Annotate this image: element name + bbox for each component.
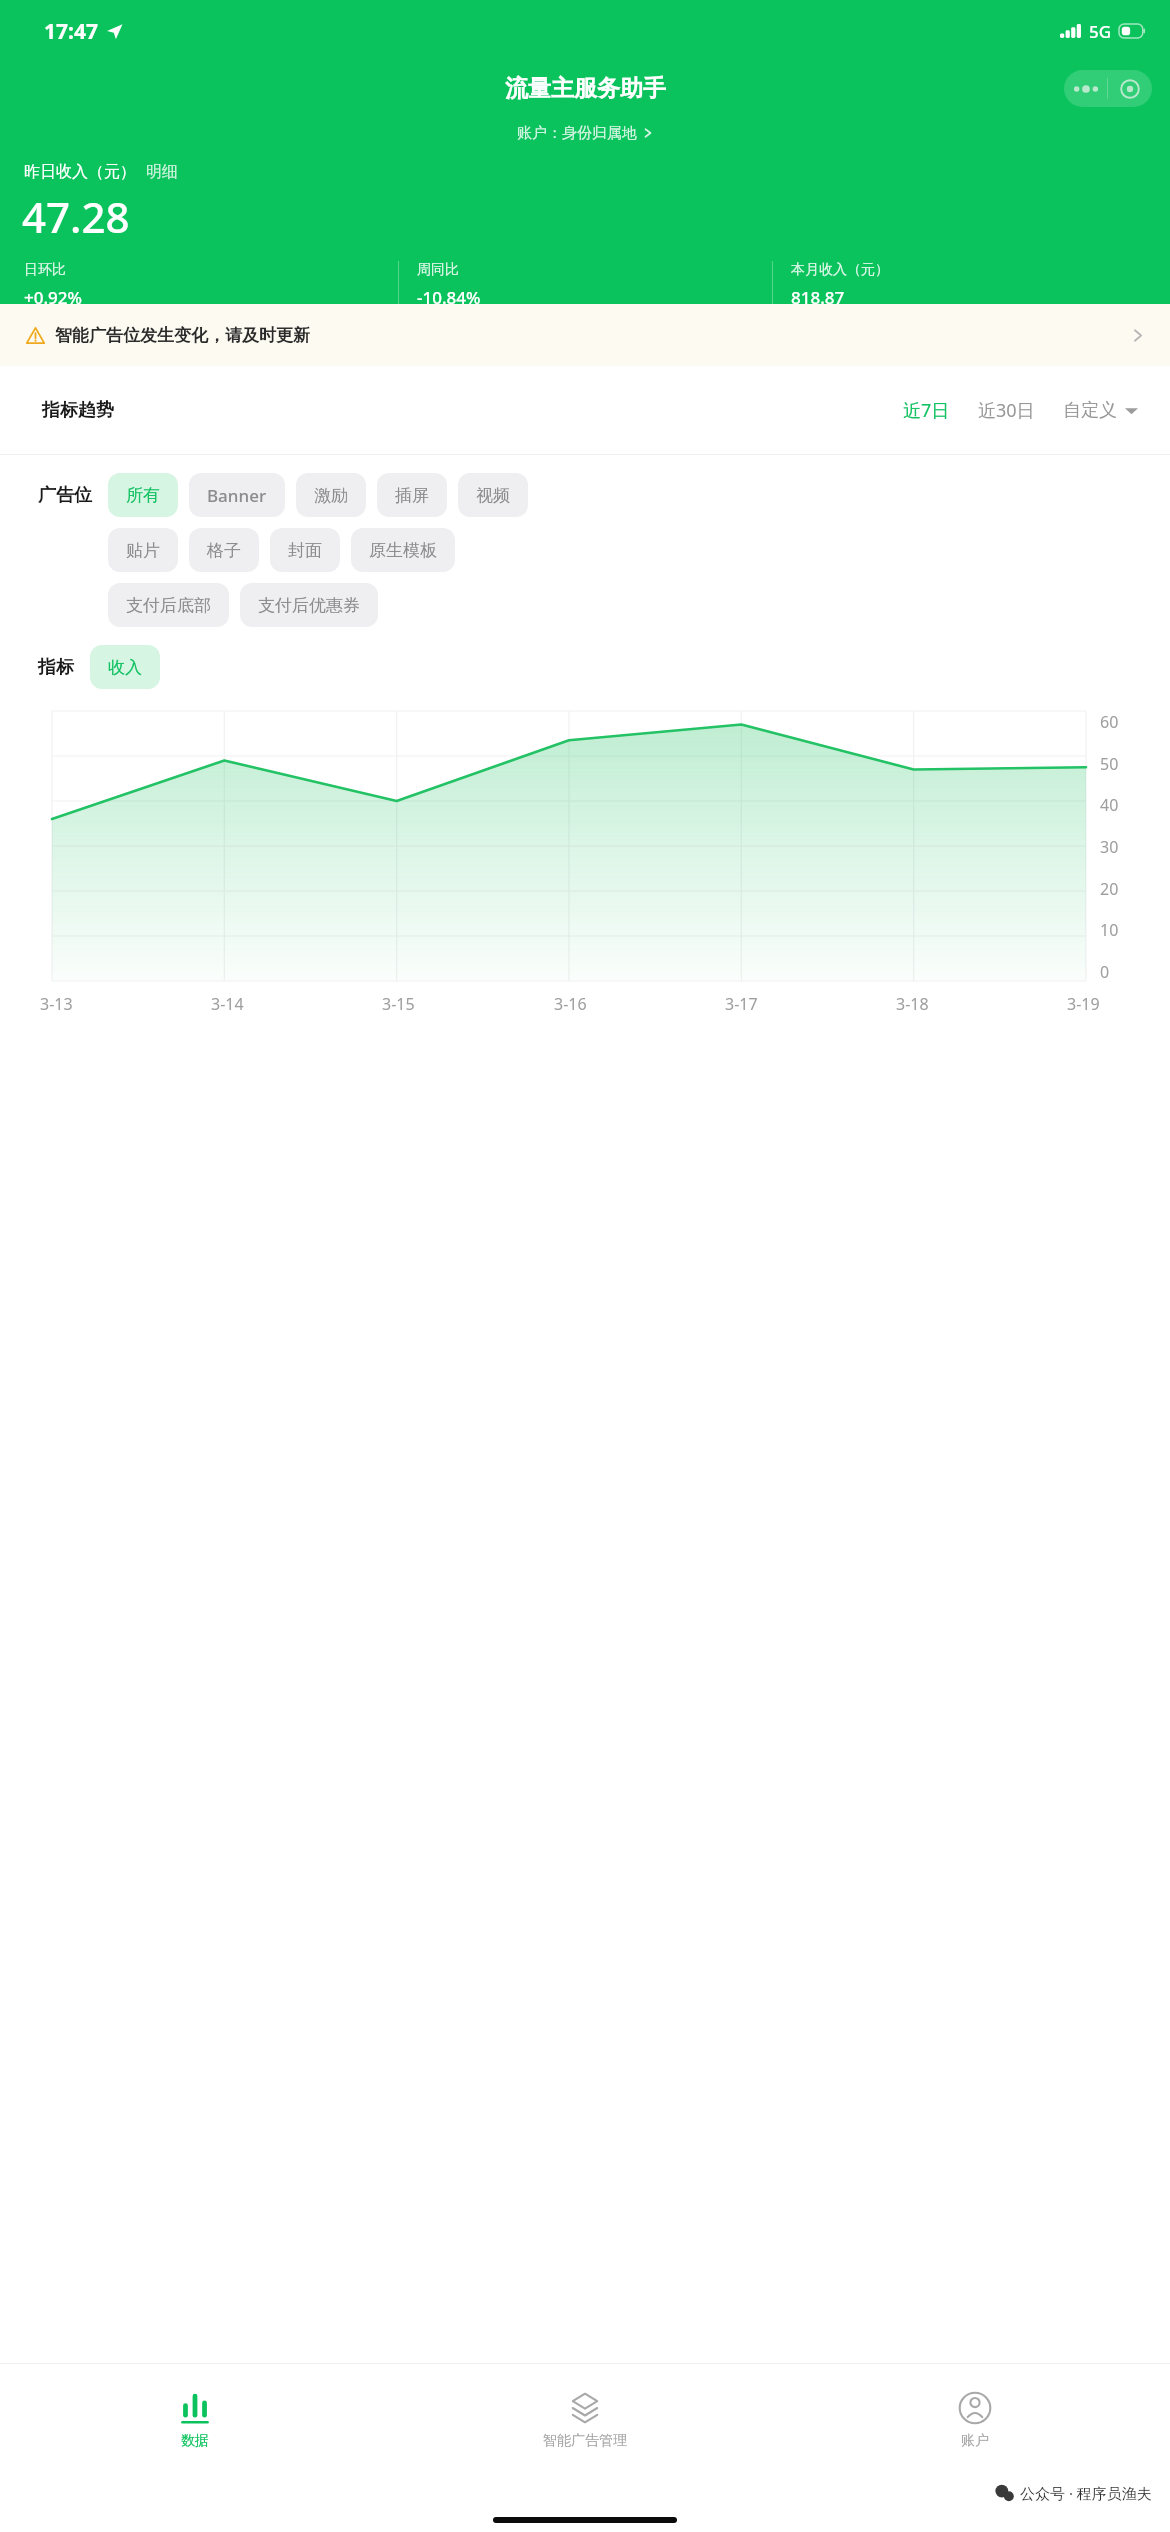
button[interactable]: 智能广告位发生变化，请及时更新 xyxy=(0,304,1170,366)
staticText: 广告位 xyxy=(38,484,92,507)
button[interactable]: 智能广告管理 xyxy=(390,2364,780,2476)
button[interactable]: 原生模板 xyxy=(351,528,455,572)
staticText: 本月收入（元） xyxy=(791,261,889,279)
staticText: 40 xyxy=(1100,794,1119,814)
button[interactable]: 数据 xyxy=(0,2364,390,2476)
staticText: 数据 xyxy=(181,2432,209,2450)
staticText: 周同比 xyxy=(417,261,459,279)
button[interactable]: 账户：身份归属地 xyxy=(0,114,1170,152)
staticText: 封面 xyxy=(288,540,322,561)
staticText: 47.28 xyxy=(22,188,130,245)
button[interactable]: Close xyxy=(1108,70,1152,107)
staticText: 自定义 xyxy=(1063,399,1117,422)
staticText: 激励 xyxy=(314,485,348,506)
staticText: 0 xyxy=(1100,961,1110,981)
button[interactable]: 支付后优惠券 xyxy=(240,583,378,627)
staticText: +0.92% xyxy=(24,286,83,304)
staticText: 日环比 xyxy=(24,261,66,279)
staticText: Banner xyxy=(207,484,267,507)
button[interactable]: Banner xyxy=(189,473,285,517)
staticText: 收入 xyxy=(108,657,142,678)
staticText: 50 xyxy=(1100,753,1119,773)
staticText: 所有 xyxy=(126,485,160,506)
staticText: 格子 xyxy=(207,540,241,561)
staticText: 明细 xyxy=(146,162,178,182)
staticText: 3-15 xyxy=(382,993,415,1015)
button[interactable]: 封面 xyxy=(270,528,340,572)
button[interactable]: 视频 xyxy=(458,473,528,517)
staticText: 3-19 xyxy=(1067,993,1100,1015)
button[interactable]: 激励 xyxy=(296,473,366,517)
staticText: 20 xyxy=(1100,878,1119,898)
staticText: 指标 xyxy=(38,656,74,679)
button[interactable]: 贴片 xyxy=(108,528,178,572)
staticText: 17:47 xyxy=(44,17,98,46)
staticText: 10 xyxy=(1100,919,1119,939)
staticText: 贴片 xyxy=(126,540,160,561)
button[interactable]: 近30日 xyxy=(978,398,1035,423)
staticText: 视频 xyxy=(476,485,510,506)
button[interactable]: 近7日 xyxy=(903,398,950,423)
button[interactable]: 格子 xyxy=(189,528,259,572)
button[interactable]: 所有 xyxy=(108,473,178,517)
button[interactable]: 收入 xyxy=(90,645,160,689)
staticText: 3-17 xyxy=(725,993,758,1015)
button[interactable]: 自定义 xyxy=(1063,399,1138,422)
staticText: 3-18 xyxy=(896,993,929,1015)
button[interactable]: 明细 xyxy=(146,162,178,182)
button[interactable]: 插屏 xyxy=(377,473,447,517)
staticText: 60 xyxy=(1100,711,1119,731)
button[interactable]: 支付后底部 xyxy=(108,583,229,627)
button[interactable]: 账户 xyxy=(780,2364,1170,2476)
staticText: 昨日收入（元） xyxy=(24,162,136,182)
staticText: 账户：身份归属地 xyxy=(517,124,637,143)
button[interactable]: More xyxy=(1064,70,1107,107)
staticText: 30 xyxy=(1100,836,1119,856)
staticText: 账户 xyxy=(961,2432,989,2450)
staticText: 支付后优惠券 xyxy=(258,595,360,616)
staticText: 智能广告管理 xyxy=(543,2432,627,2450)
staticText: 近30日 xyxy=(978,398,1035,423)
staticText: 3-16 xyxy=(554,993,587,1015)
staticText: 智能广告位发生变化，请及时更新 xyxy=(55,325,310,346)
staticText: 插屏 xyxy=(395,485,429,506)
staticText: 3-13 xyxy=(40,993,73,1015)
staticText: 818.87 xyxy=(791,286,845,304)
staticText: 流量主服务助手 xyxy=(505,74,666,103)
staticText: 近7日 xyxy=(903,398,950,423)
staticText: -10.84% xyxy=(417,286,481,304)
staticText: 5G xyxy=(1089,20,1112,43)
staticText: 原生模板 xyxy=(369,540,437,561)
staticText: 3-14 xyxy=(211,993,244,1015)
staticText: 支付后底部 xyxy=(126,595,211,616)
staticText: 公众号 · 程序员渔夫 xyxy=(1020,2483,1152,2503)
staticText: 指标趋势 xyxy=(42,399,114,422)
